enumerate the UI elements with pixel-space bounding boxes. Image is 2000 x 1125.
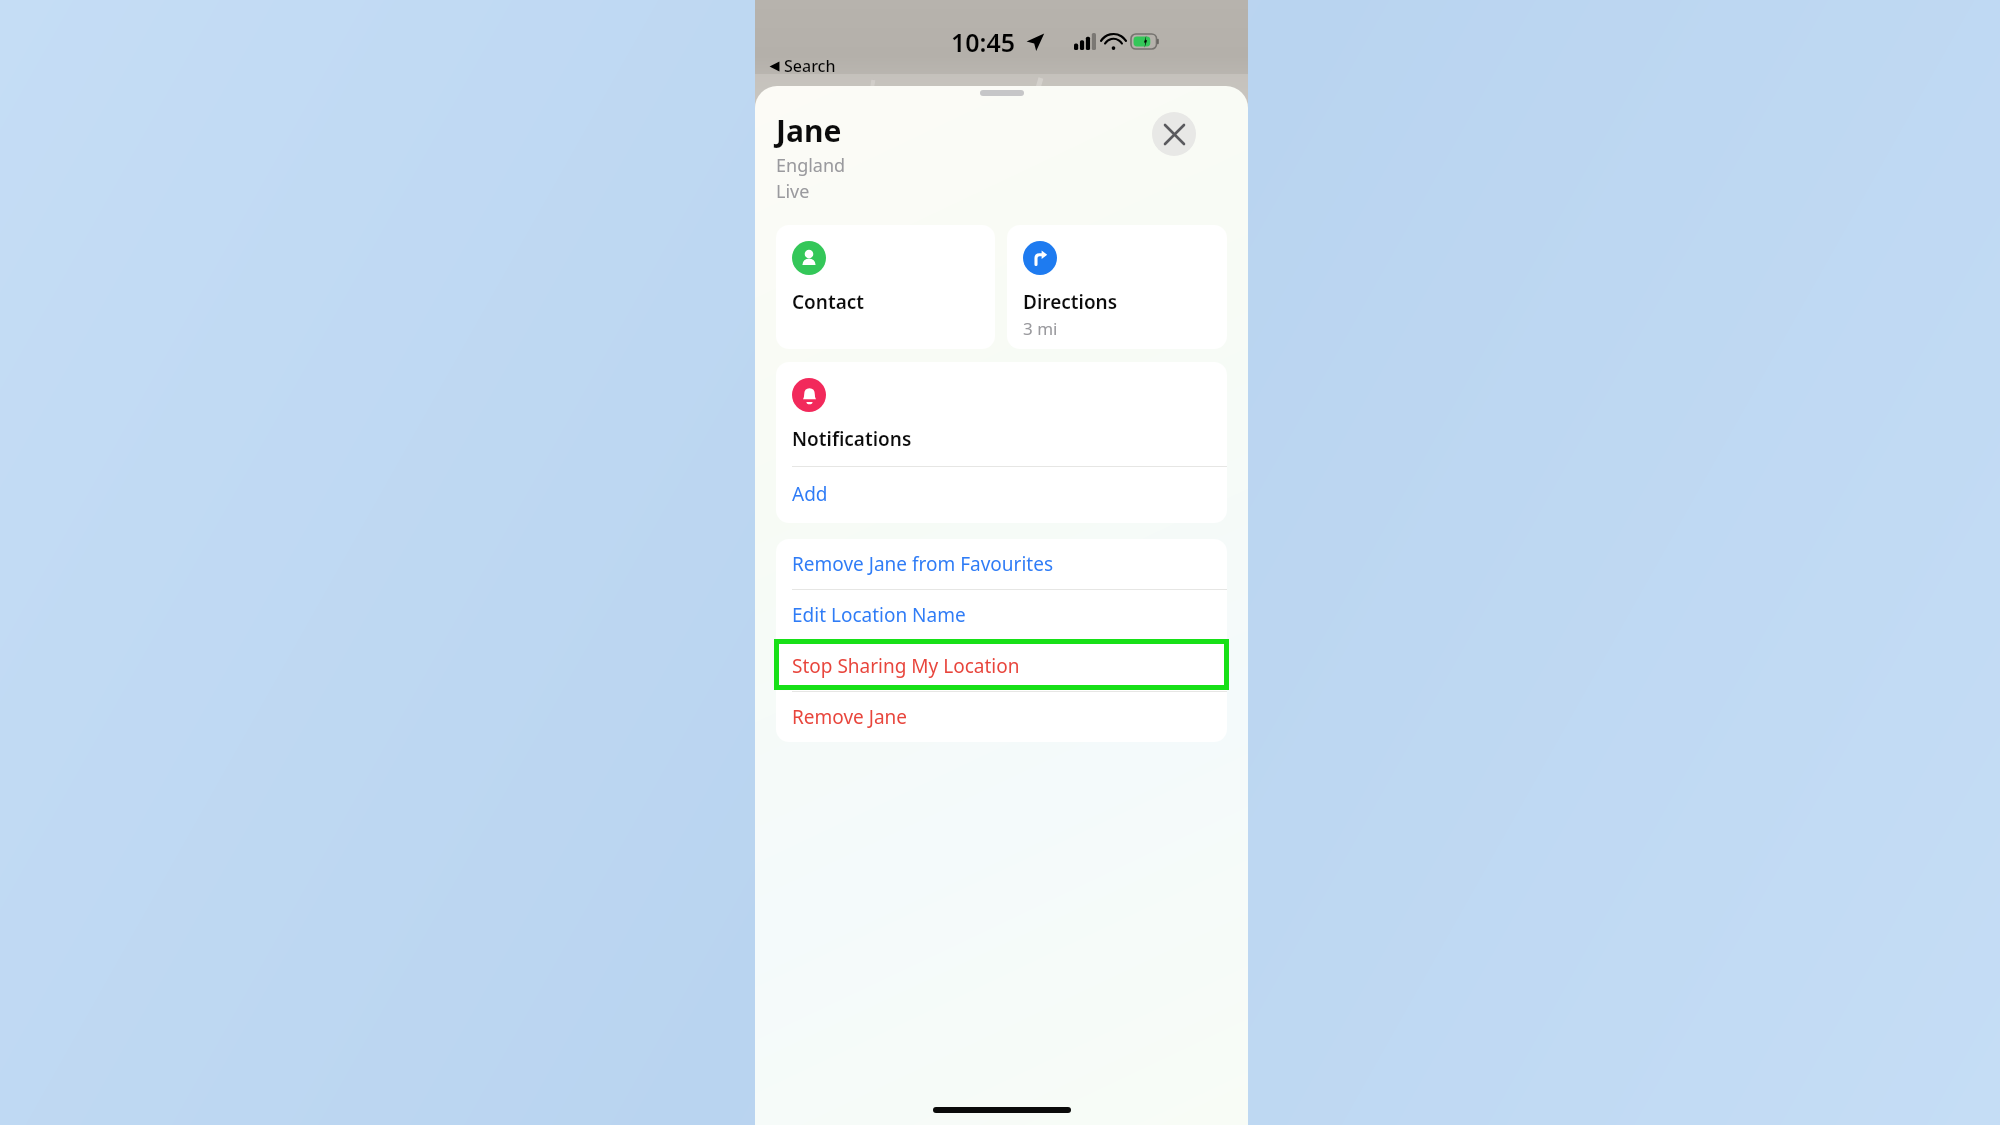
staticText: Remove Jane: [792, 704, 908, 730]
button[interactable]: Notifications: [776, 362, 1227, 466]
button[interactable]: Close: [1152, 112, 1196, 156]
button[interactable]: Remove Jane from Favourites: [776, 539, 1227, 589]
staticText: Remove Jane from Favourites: [792, 551, 1054, 577]
staticText: Live: [776, 179, 810, 204]
button[interactable]: Directions: [1007, 225, 1227, 349]
staticText: Notifications: [792, 426, 912, 452]
button[interactable]: Search: [765, 53, 840, 79]
staticText: Search: [784, 55, 836, 77]
staticText: England: [776, 153, 846, 178]
staticText: Jane: [776, 110, 842, 151]
button[interactable]: Edit Location Name: [776, 590, 1227, 640]
button[interactable]: Stop Sharing My Location: [776, 641, 1227, 691]
staticText: Stop Sharing My Location: [792, 653, 1020, 679]
button[interactable]: Contact: [776, 225, 995, 349]
staticText: Directions: [1023, 289, 1118, 315]
button[interactable]: Add: [776, 467, 1227, 523]
staticText: 3 mi: [1023, 317, 1058, 340]
staticText: 10:45: [951, 25, 1016, 59]
staticText: Add: [792, 481, 828, 507]
staticText: Contact: [792, 289, 865, 315]
button[interactable]: Remove Jane: [776, 692, 1227, 742]
staticText: Edit Location Name: [792, 602, 966, 628]
